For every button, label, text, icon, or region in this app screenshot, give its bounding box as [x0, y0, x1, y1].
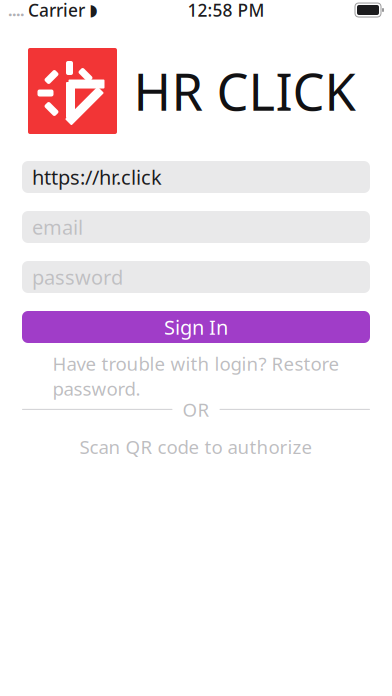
staticText: password: [32, 264, 123, 290]
button[interactable]: password: [22, 261, 370, 293]
button[interactable]: Scan QR code to authorize: [22, 434, 370, 460]
staticText: https://hr.click: [32, 164, 162, 190]
staticText: Scan QR code to authorize: [79, 434, 312, 459]
staticText: ◗: [89, 1, 97, 19]
button[interactable]: Sign In: [22, 311, 370, 343]
staticText: email: [32, 214, 83, 240]
staticText: ....: [8, 0, 24, 21]
staticText: 12:58 PM: [187, 0, 264, 21]
staticText: Have trouble with login? Restore passwor…: [52, 351, 339, 401]
button[interactable]: email: [22, 211, 370, 243]
button[interactable]: Have trouble with login? Restore passwor…: [22, 363, 370, 389]
staticText: OR: [182, 397, 209, 422]
staticText: Sign In: [164, 314, 228, 340]
button[interactable]: https://hr.click: [22, 161, 370, 193]
staticText: Carrier: [28, 0, 85, 21]
staticText: HR CLICK: [133, 57, 355, 125]
